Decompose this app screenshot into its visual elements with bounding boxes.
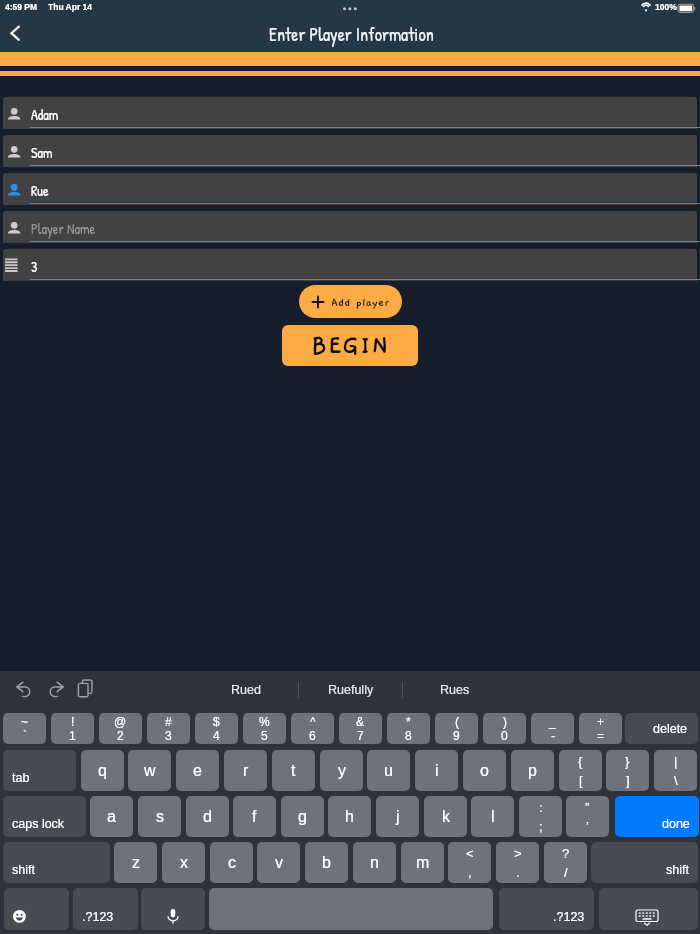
staticText: 9	[453, 729, 460, 742]
button[interactable]: done	[615, 796, 699, 837]
button[interactable]: b	[305, 842, 348, 883]
button[interactable]: Emoji	[4, 888, 69, 930]
staticText: :	[539, 800, 543, 815]
staticText: q	[98, 762, 107, 780]
button[interactable]: y	[320, 750, 363, 791]
button[interactable]: f	[233, 796, 276, 837]
staticText: 4	[213, 729, 220, 742]
button[interactable]: l	[471, 796, 514, 837]
button[interactable]: Player Name	[3, 211, 697, 244]
button[interactable]: w	[128, 750, 171, 791]
staticText: *	[406, 715, 411, 728]
staticText: l	[491, 808, 495, 826]
button[interactable]: Hide keyboard	[599, 888, 698, 930]
staticText: 4:59 PM	[5, 2, 38, 11]
button[interactable]: Rue	[3, 173, 697, 206]
button[interactable]: h	[328, 796, 371, 837]
staticText: [	[579, 773, 583, 788]
button[interactable]: >	[496, 842, 539, 883]
button[interactable]: <	[448, 842, 491, 883]
staticText: .	[516, 865, 520, 880]
button[interactable]: $	[195, 713, 238, 744]
button[interactable]: {	[559, 750, 602, 791]
button[interactable]: }	[606, 750, 649, 791]
button[interactable]: n	[353, 842, 396, 883]
staticText: p	[528, 762, 537, 780]
staticText: >	[514, 846, 522, 861]
button[interactable]: Redo	[44, 679, 66, 701]
button[interactable]: Adam	[3, 97, 697, 130]
button[interactable]: x	[162, 842, 205, 883]
button[interactable]: Rues	[405, 676, 505, 704]
button[interactable]: Undo	[14, 679, 36, 701]
button[interactable]: 3	[3, 249, 697, 282]
button[interactable]: .?123	[499, 888, 594, 930]
button[interactable]: ?	[544, 842, 587, 883]
button[interactable]: ~	[3, 713, 46, 744]
button[interactable]: *	[387, 713, 430, 744]
button[interactable]: @	[99, 713, 142, 744]
staticText: h	[345, 808, 354, 826]
button[interactable]: Back	[0, 18, 34, 52]
button[interactable]: s	[138, 796, 181, 837]
staticText: ]	[626, 773, 630, 788]
button[interactable]: (	[435, 713, 478, 744]
button[interactable]: v	[257, 842, 300, 883]
staticText: 8	[405, 729, 412, 742]
button[interactable]: t	[272, 750, 315, 791]
button[interactable]: :	[519, 796, 562, 837]
button[interactable]: &	[339, 713, 382, 744]
button[interactable]: c	[210, 842, 253, 883]
button[interactable]: i	[415, 750, 458, 791]
button[interactable]: caps lock	[3, 796, 86, 837]
staticText: ,	[468, 865, 472, 880]
button[interactable]: tab	[3, 750, 76, 791]
button[interactable]: #	[147, 713, 190, 744]
button[interactable]: Rued	[196, 676, 296, 704]
button[interactable]: j	[376, 796, 419, 837]
button[interactable]: !	[51, 713, 94, 744]
button[interactable]: g	[281, 796, 324, 837]
staticText: e	[193, 762, 202, 780]
staticText: ?	[562, 846, 570, 861]
button[interactable]: Ruefully	[301, 676, 401, 704]
button[interactable]: +	[579, 713, 622, 744]
staticText: m	[416, 854, 430, 872]
button[interactable]: Voice input	[141, 888, 205, 930]
button[interactable]: _	[531, 713, 574, 744]
button[interactable]: r	[224, 750, 267, 791]
button[interactable]: .?123	[73, 888, 138, 930]
button[interactable]: d	[186, 796, 229, 837]
button[interactable]: o	[463, 750, 506, 791]
button[interactable]: z	[114, 842, 157, 883]
staticText: $	[213, 715, 220, 728]
button[interactable]: e	[176, 750, 219, 791]
button[interactable]: BEGIN	[282, 325, 418, 366]
button[interactable]: ”	[566, 796, 609, 837]
button[interactable]: shift	[3, 842, 110, 883]
button[interactable]: m	[401, 842, 444, 883]
button[interactable]: shift	[591, 842, 698, 883]
button[interactable]: p	[511, 750, 554, 791]
button[interactable]: u	[367, 750, 410, 791]
button[interactable]: q	[81, 750, 124, 791]
button[interactable]: ^	[291, 713, 334, 744]
staticText: Rued	[231, 683, 261, 697]
button[interactable]: Add player	[299, 285, 402, 318]
staticText: {	[578, 754, 583, 769]
staticText: d	[203, 808, 212, 826]
button[interactable]: Sam	[3, 135, 697, 168]
button[interactable]: |	[654, 750, 697, 791]
button[interactable]: delete	[625, 713, 698, 744]
staticText: z	[132, 854, 140, 872]
button[interactable]: )	[483, 713, 526, 744]
staticText: +	[597, 715, 605, 728]
button[interactable]: Paste	[76, 678, 98, 702]
staticText: c	[228, 854, 236, 872]
button[interactable]: %	[243, 713, 286, 744]
button[interactable]: k	[424, 796, 467, 837]
button[interactable]: a	[90, 796, 133, 837]
staticText: #	[165, 715, 172, 728]
